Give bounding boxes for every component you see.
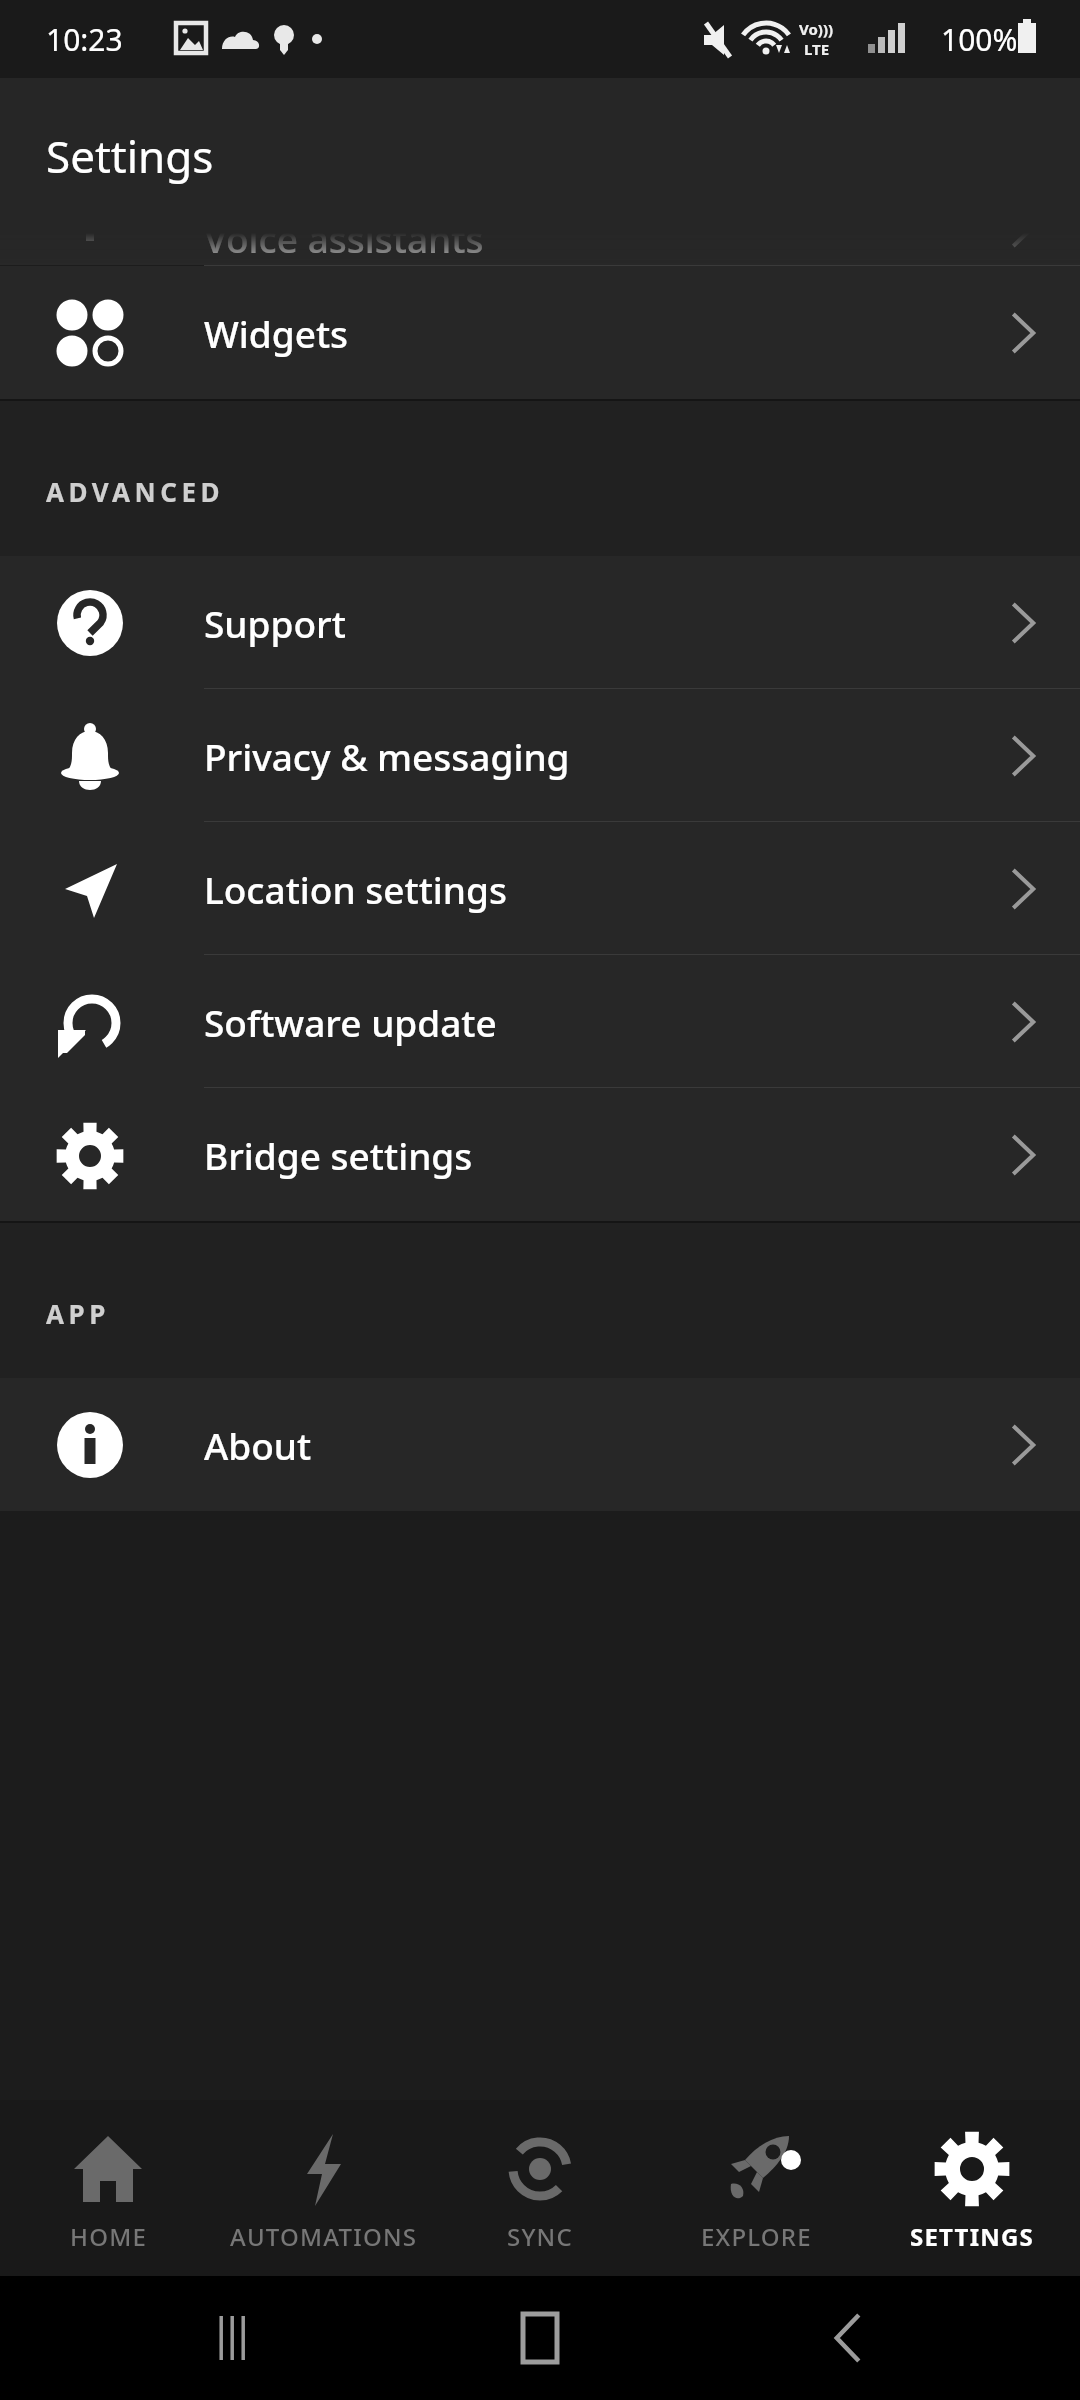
staticText: 100% (941, 19, 1018, 60)
button[interactable]: Bridge settings (0, 1088, 1080, 1221)
staticText: ADVANCED (46, 474, 225, 509)
button[interactable]: Software update (0, 955, 1080, 1088)
button[interactable]: Location settings (0, 822, 1080, 955)
staticText: Bridge settings (204, 1130, 473, 1180)
button[interactable]: AUTOMATIONS (216, 2100, 432, 2276)
staticText: 10:23 (46, 19, 123, 60)
staticText: Widgets (204, 308, 349, 358)
staticText: Location settings (204, 864, 507, 914)
staticText: Settings (46, 126, 214, 186)
button[interactable]: EXPLORE (648, 2100, 864, 2276)
button[interactable]: Widgets (0, 266, 1080, 399)
staticText: HOME (70, 2220, 147, 2253)
staticText: Support (204, 598, 346, 648)
button[interactable]: HOME (0, 2100, 216, 2276)
staticText: LTE (804, 39, 830, 59)
staticText: Vo))) (799, 19, 834, 39)
staticText: Voice assistants (204, 213, 484, 263)
button[interactable]: Support (0, 556, 1080, 689)
staticText: APP (46, 1296, 110, 1331)
staticText: Software update (204, 997, 497, 1047)
staticText: SETTINGS (910, 2220, 1034, 2253)
button[interactable]: SETTINGS (864, 2100, 1080, 2276)
button[interactable]: About (0, 1378, 1080, 1511)
staticText: EXPLORE (701, 2220, 812, 2253)
button[interactable]: SYNC (432, 2100, 648, 2276)
staticText: Privacy & messaging (204, 731, 570, 781)
staticText: SYNC (507, 2220, 573, 2253)
staticText: About (204, 1420, 312, 1470)
staticText: AUTOMATIONS (230, 2220, 418, 2253)
button[interactable]: Privacy & messaging (0, 689, 1080, 822)
